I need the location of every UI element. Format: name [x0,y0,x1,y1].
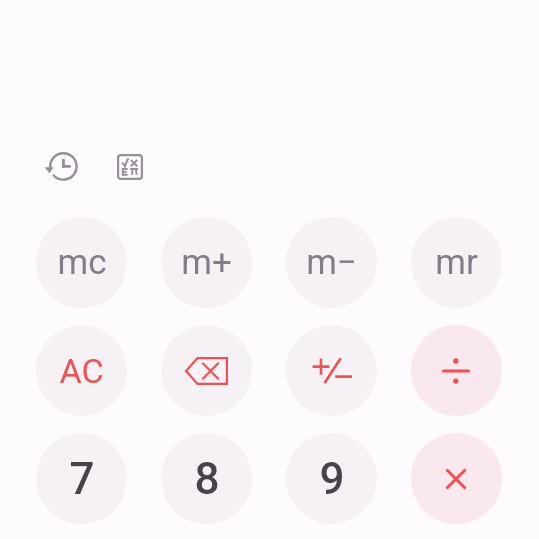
button[interactable]: 9 [286,433,377,524]
button[interactable]: mr [411,217,502,308]
button[interactable]: AC [36,325,127,416]
button[interactable]: Divide [411,325,502,416]
button[interactable]: Scientific mode [107,144,153,190]
staticText: 8 [194,453,220,505]
staticText: m− [306,242,357,283]
button[interactable]: History [37,144,83,190]
button[interactable]: Backspace [161,325,252,416]
staticText: 9 [319,453,345,505]
staticText: mc [57,242,107,283]
button[interactable]: m+ [161,217,252,308]
button[interactable]: Multiply [411,433,502,524]
staticText: 7 [69,453,95,505]
button[interactable]: Plus minus [286,325,377,416]
button[interactable]: mc [36,217,127,308]
button[interactable]: 8 [161,433,252,524]
button[interactable]: m− [286,217,377,308]
button[interactable]: 7 [36,433,127,524]
staticText: AC [59,351,104,391]
staticText: m+ [181,242,232,283]
staticText: mr [435,242,478,283]
